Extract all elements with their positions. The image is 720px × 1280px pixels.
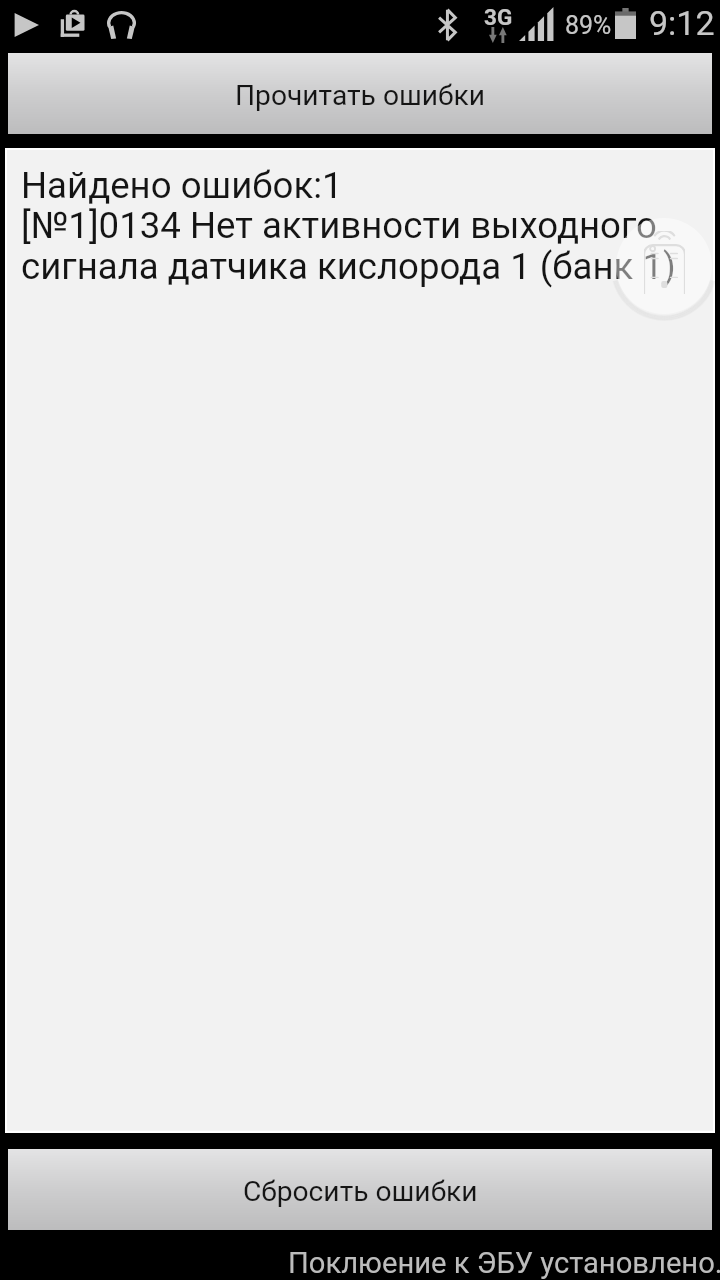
button[interactable]: Прочитать ошибки	[8, 53, 712, 134]
button[interactable]: Remote control	[616, 218, 712, 314]
staticText: 9:12	[649, 3, 715, 43]
staticText: Сбросить ошибки	[243, 1175, 478, 1208]
staticText: 3G	[484, 4, 513, 30]
staticText: Найдено ошибок:1 [№1]0134 Нет активности…	[21, 164, 711, 288]
staticText: Поклюение к ЭБУ установлено.	[288, 1246, 720, 1280]
button[interactable]: Сбросить ошибки	[8, 1149, 712, 1230]
staticText: Прочитать ошибки	[235, 79, 485, 112]
staticText: 89%	[565, 11, 612, 40]
